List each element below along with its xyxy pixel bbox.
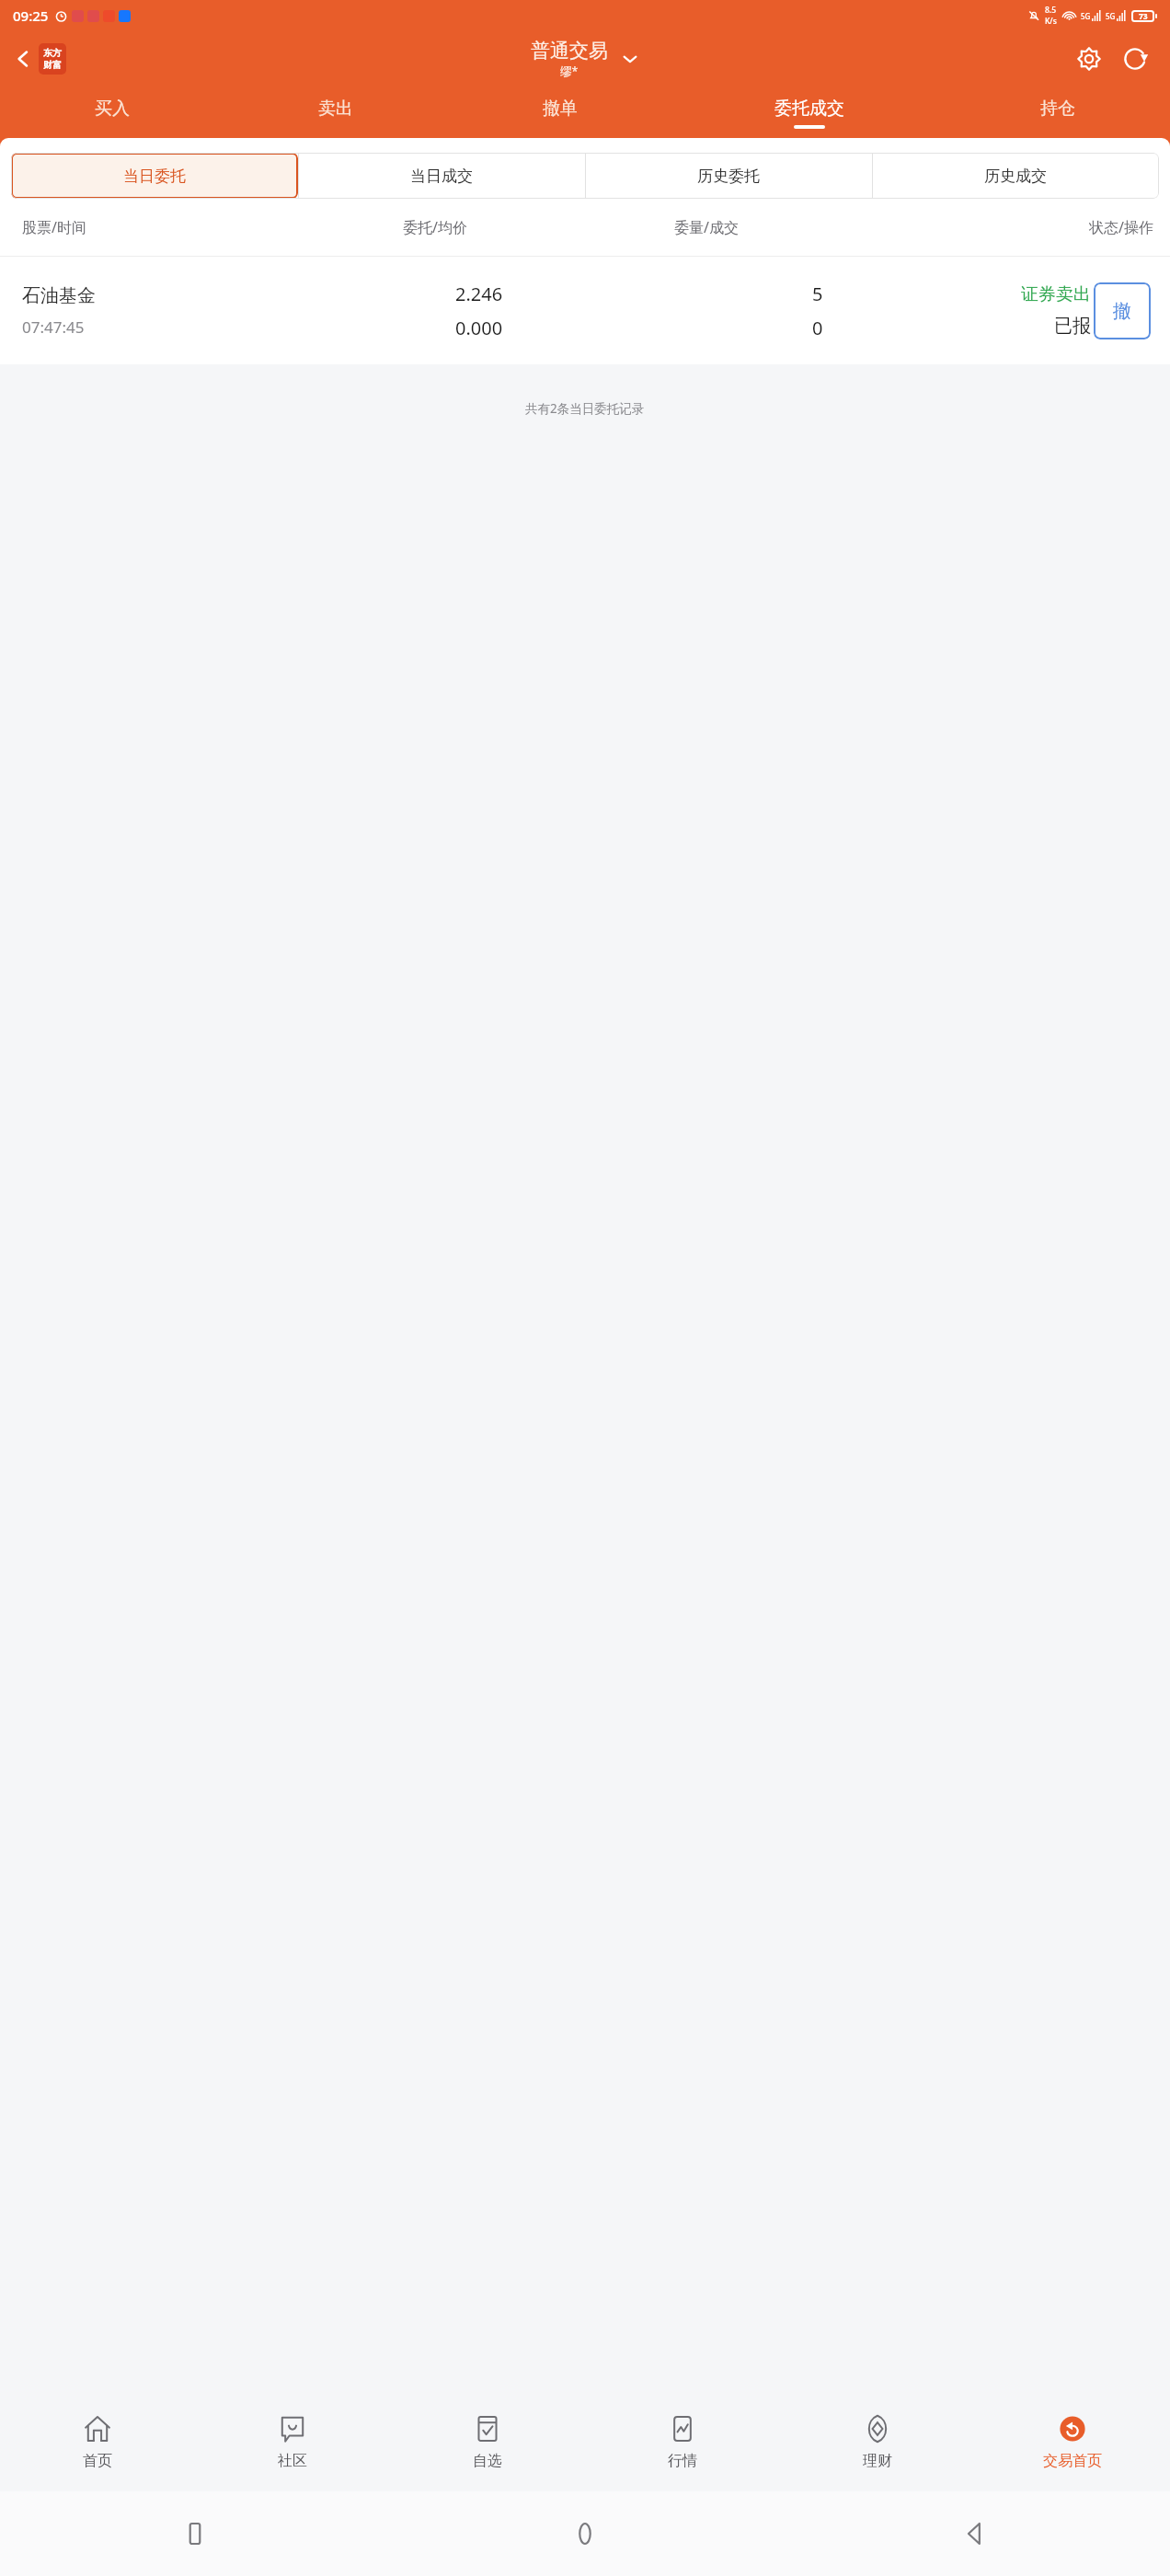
staticText: 当日委托 xyxy=(123,167,186,186)
staticText: 行情 xyxy=(668,2452,697,2470)
staticText: 历史成交 xyxy=(984,167,1047,186)
button[interactable]: 持仓 xyxy=(946,87,1170,138)
button[interactable]: 当日委托 xyxy=(11,153,298,199)
staticText: 0 xyxy=(812,316,823,340)
staticText: 0.000 xyxy=(455,316,503,340)
staticText: 东方 xyxy=(43,47,62,59)
staticText: 历史委托 xyxy=(697,167,760,186)
staticText: 财富 xyxy=(43,59,62,71)
staticText: 自选 xyxy=(473,2452,502,2470)
staticText: 理财 xyxy=(863,2452,892,2470)
staticText: 当日成交 xyxy=(410,167,473,186)
staticText: 5G xyxy=(1106,11,1116,21)
button[interactable]: 当日成交 xyxy=(298,153,585,199)
button[interactable]: 历史委托 xyxy=(585,153,872,199)
button[interactable]: 买入 xyxy=(0,87,224,138)
staticText: 状态/操作 xyxy=(1089,217,1153,237)
staticText: 普通交易 xyxy=(531,39,608,63)
staticText: 缪* xyxy=(560,63,579,79)
button[interactable]: 委托成交 xyxy=(672,87,946,138)
staticText: 2.246 xyxy=(455,282,503,306)
button[interactable]: 行情 xyxy=(585,2392,780,2491)
staticText: 已报 xyxy=(1054,315,1091,338)
staticText: 共有2条当日委托记录 xyxy=(525,400,645,417)
staticText: 委托成交 xyxy=(774,98,844,120)
button[interactable]: 撤 xyxy=(1094,282,1151,339)
button[interactable]: 主页 xyxy=(390,2491,780,2576)
staticText: 卖出 xyxy=(318,98,353,120)
button[interactable]: 首页 xyxy=(0,2392,195,2491)
button[interactable]: 返回 东方财富 xyxy=(9,40,70,78)
button[interactable]: 最近任务 xyxy=(0,2491,390,2576)
staticText: 5 xyxy=(812,282,823,306)
staticText: K/s xyxy=(1045,16,1057,27)
staticText: 首页 xyxy=(83,2452,112,2470)
staticText: 石油基金 xyxy=(22,284,96,307)
staticText: 5G xyxy=(1081,11,1091,21)
button[interactable]: 社区 xyxy=(195,2392,390,2491)
staticText: 09:25 xyxy=(13,6,49,25)
button[interactable]: 自选 xyxy=(390,2392,585,2491)
staticText: 73 xyxy=(1139,11,1148,22)
staticText: 撤单 xyxy=(543,98,578,120)
staticText: 交易首页 xyxy=(1043,2452,1102,2470)
button[interactable]: 刷新 xyxy=(1115,39,1155,79)
staticText: 买入 xyxy=(95,98,130,120)
staticText: 委托/均价 xyxy=(403,217,467,237)
button[interactable]: 卖出 xyxy=(224,87,448,138)
button[interactable]: 交易首页 xyxy=(975,2392,1170,2491)
button[interactable]: 普通交易 xyxy=(531,39,639,79)
staticText: 撤 xyxy=(1113,300,1131,323)
button[interactable]: 理财 xyxy=(780,2392,975,2491)
staticText: 社区 xyxy=(278,2452,307,2470)
staticText: 持仓 xyxy=(1040,98,1075,120)
button[interactable]: 历史成交 xyxy=(872,153,1159,199)
staticText: 07:47:45 xyxy=(22,316,85,338)
button[interactable]: 设置 xyxy=(1069,39,1109,79)
staticText: 8.5 xyxy=(1045,5,1057,16)
staticText: 股票/时间 xyxy=(22,217,86,237)
staticText: 证券卖出 xyxy=(1021,283,1091,305)
button[interactable]: 撤单 xyxy=(448,87,672,138)
button[interactable]: 石油基金 xyxy=(0,257,1170,364)
staticText: 委量/成交 xyxy=(674,217,739,237)
button[interactable]: 返回 xyxy=(780,2491,1170,2576)
